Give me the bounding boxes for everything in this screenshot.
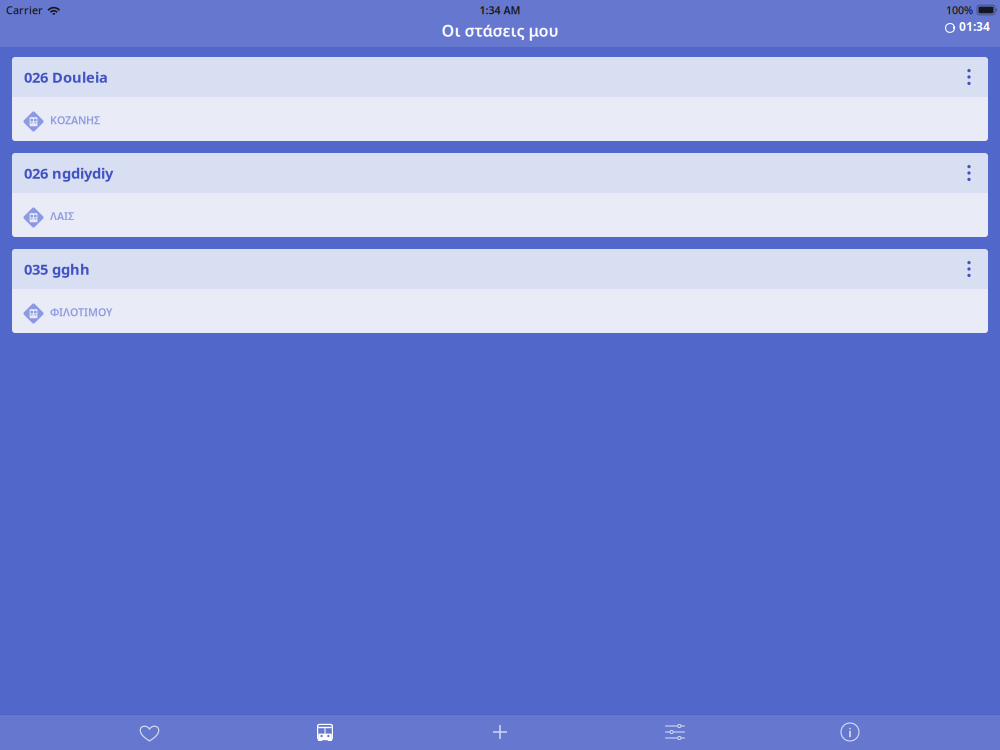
button[interactable]: Refresh — last updated 01:34 <box>935 20 1000 47</box>
button[interactable]: Add stop <box>412 714 587 750</box>
button[interactable]: ΚΟΖΑΝΗΣ <box>12 97 988 141</box>
button[interactable]: Info <box>762 714 937 750</box>
button[interactable]: Favourites <box>62 714 237 750</box>
button[interactable]: More options for 026 ngdiydiy <box>950 153 988 193</box>
staticText: ΦΙΛΟΤΙΜΟΥ <box>50 305 112 319</box>
staticText: Carrier <box>6 3 43 17</box>
button[interactable]: More options for 026 Douleia <box>950 57 988 97</box>
button[interactable]: ΦΙΛΟΤΙΜΟΥ <box>12 289 988 333</box>
staticText: 01:34 <box>959 18 990 34</box>
staticText: 100% <box>946 3 973 17</box>
staticText: 035 gghh <box>24 259 90 279</box>
staticText: 026 ngdiydiy <box>24 163 113 183</box>
staticText: 026 Douleia <box>24 67 108 87</box>
button[interactable]: Filters <box>587 714 762 750</box>
staticText: ΚΟΖΑΝΗΣ <box>50 113 100 127</box>
staticText: ΛΑΙΣ <box>50 209 74 223</box>
staticText: 1:34 AM <box>479 3 520 17</box>
button[interactable]: ΛΑΙΣ <box>12 193 988 237</box>
staticText: Οι στάσεις μου <box>441 20 558 41</box>
button[interactable]: Lines <box>237 714 412 750</box>
button[interactable]: More options for 035 gghh <box>950 249 988 289</box>
